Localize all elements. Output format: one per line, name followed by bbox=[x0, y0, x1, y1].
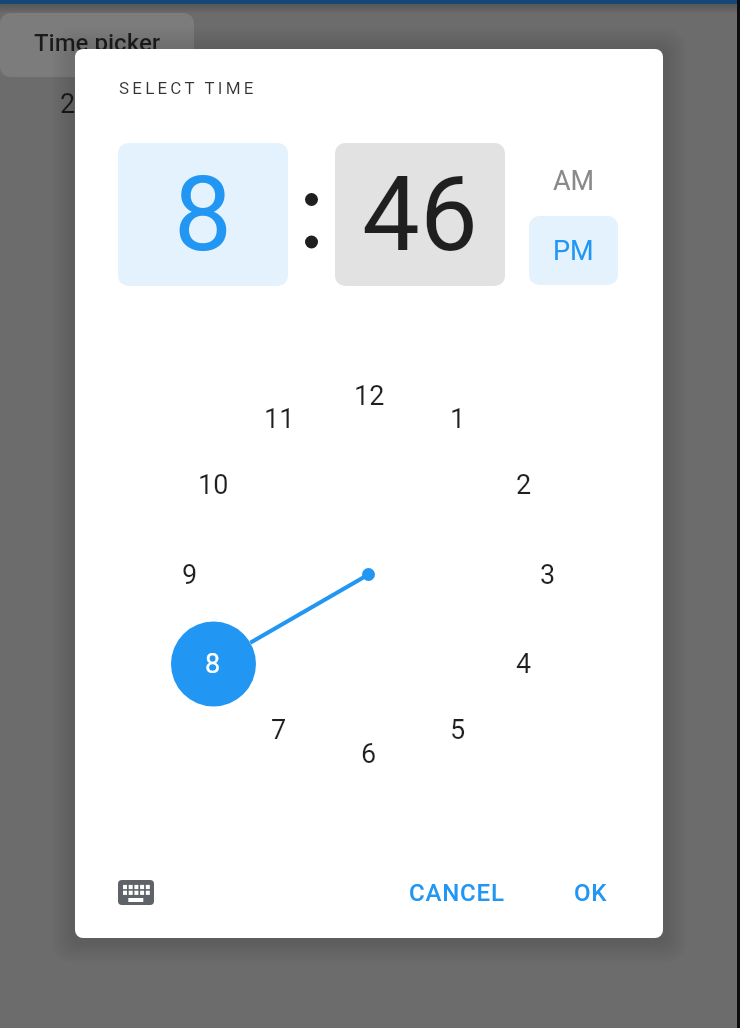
staticText: 4 bbox=[516, 648, 532, 680]
button[interactable]: CANCEL bbox=[395, 867, 518, 918]
button[interactable]: 8 bbox=[118, 143, 288, 286]
staticText: 5 bbox=[450, 714, 466, 746]
staticText: 9 bbox=[182, 559, 198, 591]
button[interactable] bbox=[106, 868, 166, 917]
staticText: 8 bbox=[174, 154, 232, 275]
staticText: AM bbox=[553, 165, 595, 197]
staticText: 11 bbox=[264, 403, 295, 435]
staticText: 10 bbox=[198, 469, 229, 501]
staticText: 2 bbox=[516, 469, 532, 501]
staticText: 1 bbox=[450, 403, 466, 435]
staticText: 3 bbox=[540, 559, 556, 591]
button[interactable]: 46 bbox=[335, 143, 505, 286]
button[interactable]: Time picker bbox=[0, 13, 194, 77]
staticText: SELECT TIME bbox=[119, 78, 257, 98]
staticText: 12 bbox=[354, 380, 385, 412]
button[interactable]: AM bbox=[529, 146, 618, 215]
staticText: PM bbox=[553, 235, 594, 267]
button[interactable]: OK bbox=[553, 867, 628, 918]
staticText: OK bbox=[574, 879, 608, 907]
staticText: 46 bbox=[362, 154, 478, 275]
staticText: CANCEL bbox=[409, 879, 505, 907]
button[interactable]: PM bbox=[529, 216, 618, 285]
staticText: 7 bbox=[271, 714, 287, 746]
staticText: 8 bbox=[205, 648, 221, 680]
staticText: Time picker bbox=[34, 29, 161, 57]
staticText: 2 bbox=[60, 88, 76, 120]
staticText: 6 bbox=[361, 738, 377, 770]
